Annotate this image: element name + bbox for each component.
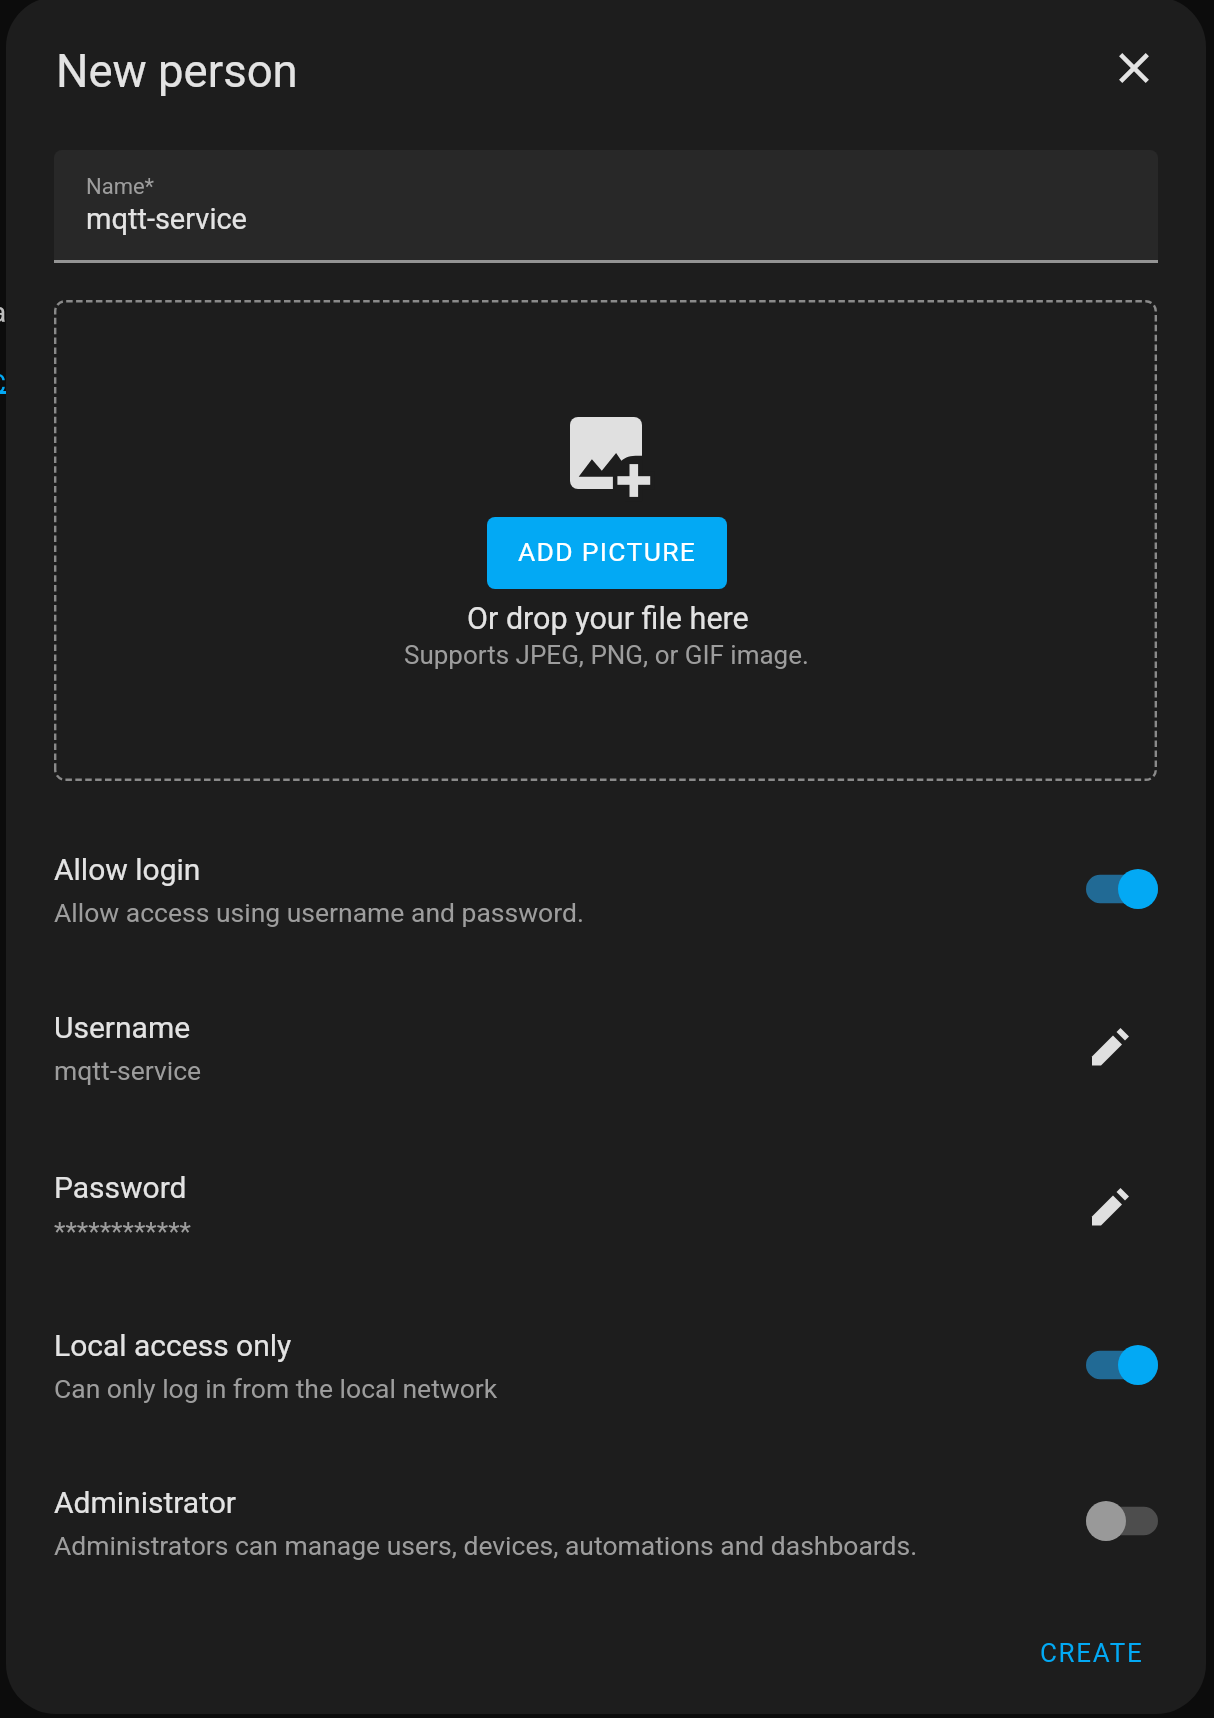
staticText: Or drop your file here — [467, 601, 749, 637]
staticText: a — [0, 296, 7, 329]
button[interactable]: Username — [6, 1004, 1200, 1104]
staticText: mqtt-service — [54, 1055, 202, 1086]
staticText: Administrator — [54, 1485, 236, 1520]
staticText: ************ — [54, 1215, 191, 1246]
staticText: Local access only — [54, 1328, 292, 1363]
button[interactable]: Administrator — [6, 1479, 1200, 1579]
staticText: ADD PICTURE — [518, 536, 697, 567]
staticText: Allow login — [54, 852, 201, 887]
staticText: mqtt-service — [86, 202, 247, 236]
staticText: Administrators can manage users, devices… — [54, 1530, 918, 1561]
staticText: Password — [54, 1170, 187, 1205]
staticText: Allow access using username and password… — [54, 897, 584, 928]
button[interactable]: CREATE — [1023, 1614, 1161, 1692]
button[interactable]: Allow login — [6, 846, 1200, 946]
button[interactable]: Password — [6, 1164, 1200, 1264]
staticText: Can only log in from the local network — [54, 1373, 498, 1404]
button[interactable]: Edit Username — [1074, 1010, 1146, 1082]
staticText: CREATE — [1040, 1638, 1144, 1668]
button[interactable]: Close — [1094, 28, 1174, 108]
button[interactable]: Edit Password — [1074, 1170, 1146, 1242]
staticText: New person — [56, 45, 298, 98]
staticText: C — [0, 369, 6, 399]
button[interactable]: ADD PICTURE — [487, 517, 727, 589]
staticText: Name* — [86, 174, 155, 200]
button[interactable]: Local access only — [6, 1322, 1200, 1422]
staticText: Username — [54, 1010, 191, 1045]
staticText: Supports JPEG, PNG, or GIF image. — [404, 640, 809, 670]
button[interactable] — [54, 150, 1158, 263]
